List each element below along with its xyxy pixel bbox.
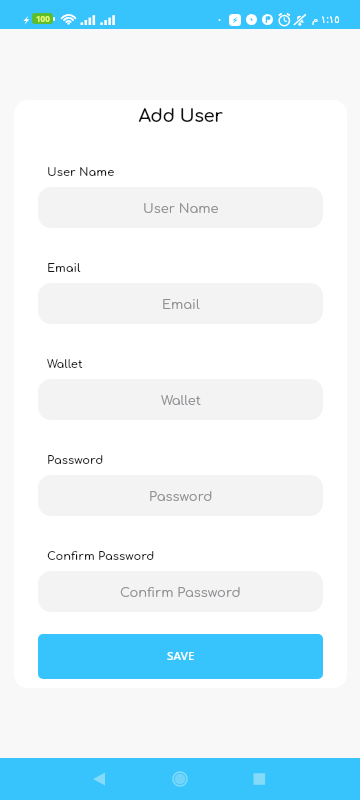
staticText: SAVE [167, 648, 195, 664]
staticText: Wallet [47, 358, 83, 371]
button[interactable]: Recent apps [235, 758, 285, 800]
staticText: Password [47, 454, 104, 467]
staticText: Email [47, 262, 81, 275]
staticText: Add User [14, 106, 347, 126]
button[interactable]: Password [38, 475, 323, 516]
staticText: Confirm Password [47, 550, 155, 563]
staticText: 100 [36, 13, 50, 24]
button[interactable]: Home [155, 758, 205, 800]
staticText: Confirm Password [120, 586, 241, 600]
staticText: ١:١٥ م [312, 12, 340, 26]
staticText: User Name [143, 202, 219, 216]
button[interactable]: Confirm Password [38, 571, 323, 612]
button[interactable]: SAVE [38, 634, 323, 679]
button[interactable]: Wallet [38, 379, 323, 420]
staticText: Password [149, 490, 213, 504]
button[interactable]: Back [75, 758, 125, 800]
staticText: User Name [47, 166, 115, 179]
button[interactable]: User Name [38, 187, 323, 228]
staticText: Wallet [161, 394, 201, 408]
staticText: Email [162, 298, 200, 312]
button[interactable]: Email [38, 283, 323, 324]
